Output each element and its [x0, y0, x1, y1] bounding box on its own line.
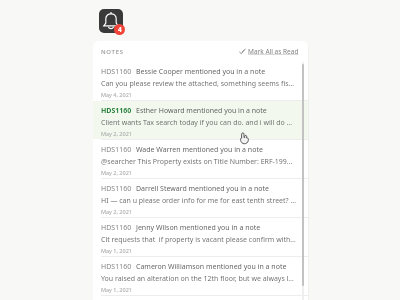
staticText: You raised an alteration on the 12th flo…	[101, 274, 296, 284]
button[interactable]: HDS1160	[93, 140, 308, 178]
button[interactable]: Mark All as Read	[238, 45, 300, 58]
staticText: May 2, 2021	[101, 130, 132, 137]
button[interactable]: HDS1160	[93, 62, 308, 100]
staticText: HDS1160	[101, 145, 132, 155]
staticText: Jenny Wilson mentioned you in a note	[136, 223, 261, 233]
button[interactable]: Notifications	[99, 9, 123, 33]
staticText: Mark All as Read	[248, 47, 299, 56]
button[interactable]: HDS1160	[93, 179, 308, 217]
staticText: HDS1160	[101, 106, 132, 116]
staticText: May 4, 2021	[101, 91, 132, 98]
button[interactable]: HDS1160	[93, 218, 308, 256]
staticText: Clt requests that if property is vacant …	[101, 235, 296, 245]
staticText: May 2, 2021	[101, 208, 132, 215]
staticText: HI — can u please order info for me for …	[101, 196, 296, 206]
staticText: HDS1160	[101, 184, 132, 194]
button[interactable]: HDS1160	[93, 101, 308, 139]
staticText: May 2, 2021	[101, 169, 132, 176]
staticText: Esther Howard mentioned you in a note	[136, 106, 267, 116]
staticText: Darrell Steward mentioned you in a note	[136, 184, 270, 194]
staticText: Wade Warren mentioned you in a note	[136, 145, 263, 155]
staticText: Bessie Cooper mentioned you in a note	[136, 67, 266, 77]
staticText: HDS1160	[101, 262, 132, 272]
staticText: May 1, 2021	[101, 286, 132, 293]
staticText: 4	[118, 25, 122, 34]
staticText: Client wants Tax search today if you can…	[101, 118, 296, 128]
staticText: Can you please review the attached, some…	[101, 79, 296, 89]
staticText: Cameron Williamson mentioned you in a no…	[136, 262, 287, 272]
staticText: NOTES	[101, 48, 124, 56]
staticText: @searcher This Property exists on Title …	[101, 157, 296, 167]
staticText: HDS1160	[101, 223, 132, 233]
staticText: May 1, 2021	[101, 247, 132, 254]
button[interactable]: HDS1160	[93, 257, 308, 295]
staticText: HDS1160	[101, 67, 132, 77]
